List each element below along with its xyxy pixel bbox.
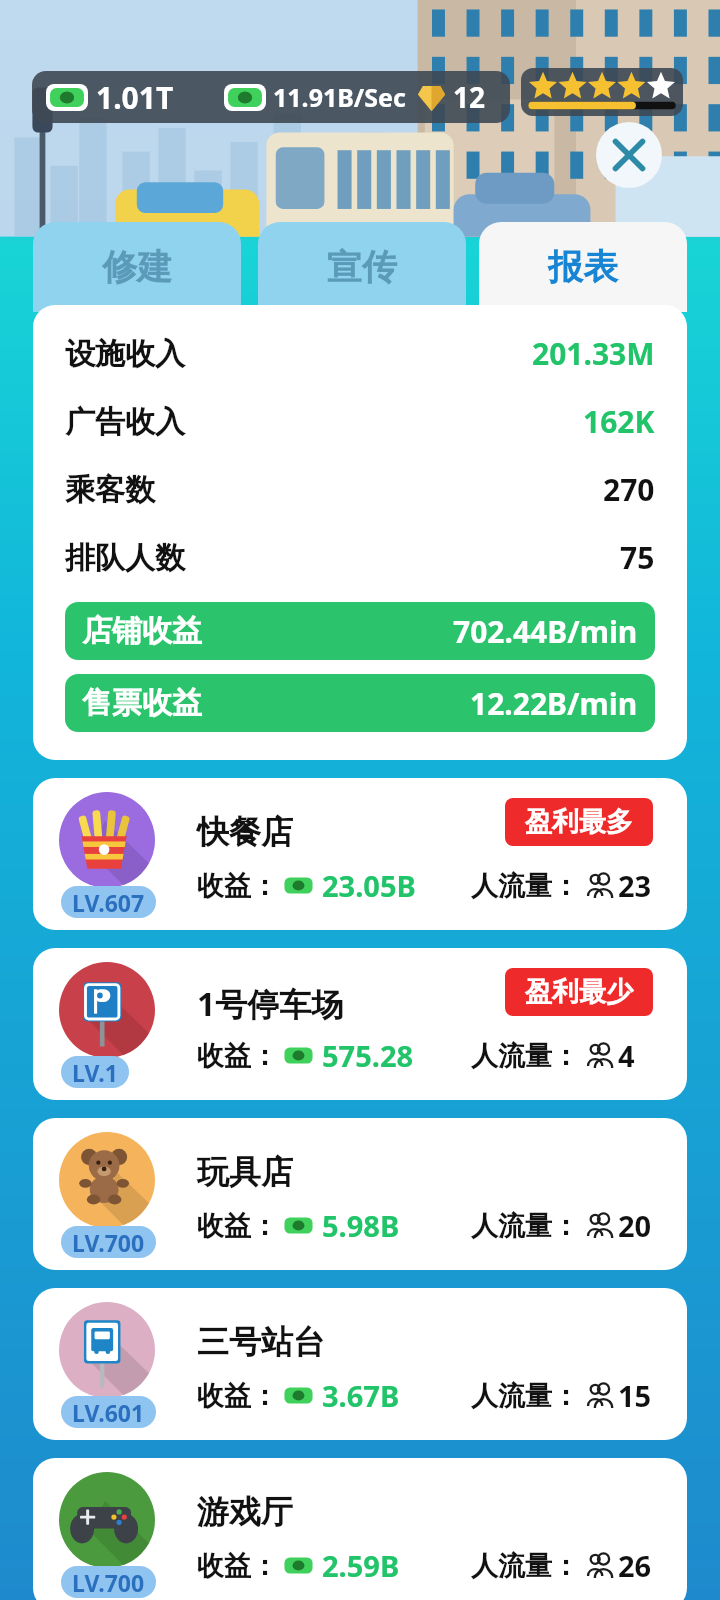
staticText: LV.601 [72,1397,145,1428]
staticText: 设施收入 [65,335,185,373]
staticText: 宣传 [327,245,397,289]
staticText: 1.01T [96,77,174,118]
staticText: 人流量： [471,1379,579,1413]
staticText: 店铺收益 [82,612,202,650]
staticText: 26 [618,1546,652,1585]
staticText: 5.98B [322,1206,400,1245]
staticText: LV.700 [72,1567,145,1598]
staticText: 玩具店 [197,1152,293,1192]
button[interactable]: LV.607 [33,778,687,930]
staticText: 乘客数 [65,471,155,509]
button[interactable]: LV.700 [33,1458,687,1600]
staticText: LV.700 [72,1227,145,1258]
button[interactable]: 修建 [33,222,241,312]
staticText: 270 [603,469,655,510]
staticText: 快餐店 [197,812,293,852]
staticText: 盈利最少 [525,975,633,1009]
staticText: 23 [618,866,652,905]
staticText: 2.59B [322,1546,400,1585]
button[interactable]: Close [596,122,662,188]
staticText: 3.67B [322,1376,400,1415]
staticText: 人流量： [471,869,579,903]
staticText: 三号站台 [197,1322,325,1362]
staticText: 4 [618,1036,635,1075]
staticText: 广告收入 [65,403,185,441]
button[interactable]: 售票收益 [65,674,655,732]
button[interactable]: Resources [32,71,510,123]
staticText: 售票收益 [82,684,202,722]
staticText: LV.607 [72,887,145,918]
button[interactable]: LV.601 [33,1288,687,1440]
staticText: 1号停车场 [197,982,344,1026]
staticText: 162K [583,401,655,442]
staticText: 人流量： [471,1209,579,1243]
staticText: 收益： [197,1549,278,1583]
button[interactable]: LV.1 [33,948,687,1100]
staticText: 盈利最多 [525,805,633,839]
staticText: 收益： [197,1379,278,1413]
staticText: 报表 [548,245,618,289]
staticText: 11.91B/Sec [273,80,406,114]
staticText: 人流量： [471,1549,579,1583]
staticText: 游戏厅 [197,1492,293,1532]
staticText: 收益： [197,1209,278,1243]
staticText: LV.1 [72,1057,118,1088]
staticText: 20 [618,1206,652,1245]
button[interactable]: 盈利最多 [505,798,653,846]
staticText: 201.33M [532,333,655,374]
staticText: 12 [453,78,486,116]
button[interactable]: Station rating [521,68,683,116]
staticText: 收益： [197,869,278,903]
staticText: 15 [618,1376,652,1415]
staticText: 702.44B/min [453,611,638,652]
staticText: 修建 [102,245,172,289]
staticText: 排队人数 [65,539,185,577]
button[interactable]: 报表 [479,222,687,312]
staticText: 人流量： [471,1039,579,1073]
staticText: 75 [620,537,655,578]
staticText: 575.28 [322,1036,414,1075]
button[interactable]: 宣传 [258,222,466,312]
button[interactable]: 盈利最少 [505,968,653,1016]
staticText: 12.22B/min [470,683,638,724]
button[interactable]: 店铺收益 [65,602,655,660]
button[interactable]: LV.700 [33,1118,687,1270]
staticText: 23.05B [322,866,416,905]
staticText: 收益： [197,1039,278,1073]
